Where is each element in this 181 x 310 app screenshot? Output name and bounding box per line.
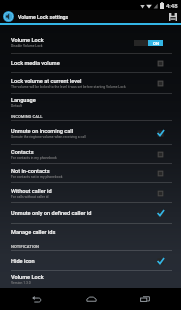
staticText: Manage caller ids bbox=[11, 229, 56, 236]
staticText: Unmute the ringtone volume when receivin… bbox=[11, 135, 86, 139]
button[interactable]: Volume Lock bbox=[0, 271, 181, 288]
button[interactable]: Unmute only on defined caller id bbox=[0, 203, 181, 224]
staticText: Hide icon bbox=[11, 258, 35, 265]
button[interactable]: Save bbox=[166, 10, 179, 23]
staticText: INCOMING CALL bbox=[11, 114, 43, 119]
staticText: Contacts bbox=[11, 149, 34, 156]
staticText: For contacts not in my phonebook bbox=[11, 175, 63, 179]
staticText: For contacts in my phonebook bbox=[11, 156, 57, 160]
staticText: Version 1.3.0 bbox=[11, 281, 31, 285]
staticText: Volume Lock settings bbox=[18, 14, 69, 20]
button[interactable]: Recent apps bbox=[127, 288, 163, 310]
staticText: Unmute only on defined caller id bbox=[11, 210, 92, 217]
staticText: Unmute on incoming call bbox=[11, 128, 74, 135]
button[interactable]: Language bbox=[0, 94, 181, 111]
staticText: Lock media volume bbox=[11, 60, 60, 67]
staticText: Volume Lock bbox=[11, 274, 44, 281]
staticText: The volume will be locked to the level i… bbox=[11, 85, 126, 89]
staticText: Disable Volume Lock bbox=[11, 44, 43, 48]
staticText: Default bbox=[11, 104, 22, 108]
button[interactable]: Hide icon bbox=[0, 251, 181, 271]
button[interactable]: Lock media volume bbox=[0, 54, 181, 73]
staticText: ON bbox=[153, 41, 159, 46]
button[interactable]: Home bbox=[73, 288, 109, 310]
staticText: NOTIFICATION bbox=[11, 244, 39, 249]
staticText: Lock volume at current level bbox=[11, 78, 82, 85]
staticText: Language bbox=[11, 97, 36, 104]
button[interactable]: Volume Lock bbox=[0, 25, 181, 54]
button[interactable]: Back bbox=[18, 288, 54, 310]
button[interactable]: Manage caller ids bbox=[0, 224, 181, 241]
staticText: 4:48 bbox=[166, 2, 178, 9]
button[interactable]: Lock volume at current level bbox=[0, 73, 181, 94]
button[interactable]: Unmute on incoming call bbox=[0, 121, 181, 145]
staticText: Volume Lock bbox=[11, 37, 44, 44]
button[interactable]: Not in-contacts bbox=[0, 164, 181, 183]
staticText: Without caller id bbox=[11, 188, 52, 195]
button[interactable]: Without caller id bbox=[0, 183, 181, 203]
button[interactable]: Contacts bbox=[0, 145, 181, 164]
staticText: For calls without caller id bbox=[11, 195, 49, 199]
staticText: Not in-contacts bbox=[11, 168, 50, 175]
